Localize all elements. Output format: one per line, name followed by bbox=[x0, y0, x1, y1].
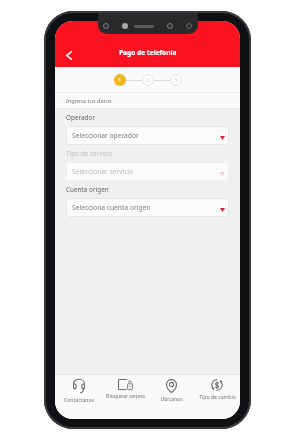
button[interactable]: 3 bbox=[170, 74, 182, 86]
staticText: Bloquear tarjeta bbox=[106, 393, 145, 400]
staticText: Ubícanos bbox=[160, 396, 183, 403]
button[interactable]: 2 bbox=[142, 74, 154, 86]
staticText: Ingresa tus datos bbox=[66, 97, 112, 105]
button[interactable]: 1 bbox=[114, 74, 126, 86]
staticText: Operador bbox=[66, 113, 96, 122]
staticText: Contáctanos bbox=[64, 397, 94, 404]
button[interactable]: Back bbox=[59, 45, 79, 65]
staticText: 3 bbox=[174, 76, 178, 84]
button[interactable]: Bloquear tarjeta bbox=[102, 375, 148, 400]
button[interactable]: Tipo de cambio bbox=[194, 375, 240, 401]
button[interactable]: Contáctanos bbox=[55, 375, 102, 404]
button[interactable]: Ubícanos bbox=[148, 375, 194, 403]
button[interactable]: Seleccionar servicio bbox=[66, 162, 229, 181]
staticText: 2 bbox=[146, 76, 150, 84]
button[interactable]: Selecciona cuenta origen bbox=[66, 198, 229, 217]
button[interactable]: Seleccionar operador bbox=[66, 126, 229, 145]
staticText: Selecciona cuenta origen bbox=[72, 203, 220, 212]
staticText: Tipo de cambio bbox=[199, 394, 236, 401]
staticText: 1 bbox=[118, 76, 122, 84]
staticText: Seleccionar operador bbox=[72, 131, 220, 140]
staticText: Seleccionar servicio bbox=[72, 167, 220, 176]
staticText: Cuenta origen bbox=[66, 185, 109, 194]
staticText: Pago de telefonía bbox=[119, 48, 177, 57]
staticText: Tipo de servicio bbox=[66, 149, 113, 158]
